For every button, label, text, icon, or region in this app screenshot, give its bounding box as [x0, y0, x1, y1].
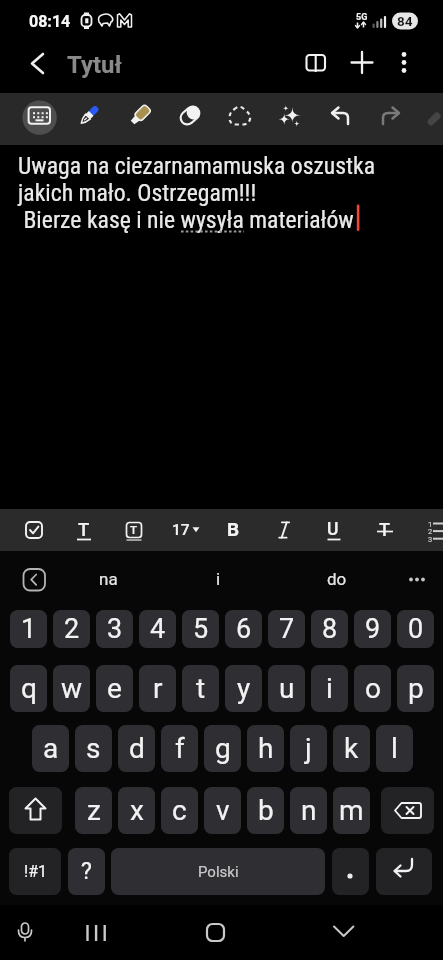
button[interactable] — [376, 848, 432, 895]
button[interactable] — [114, 510, 154, 550]
button[interactable] — [170, 558, 270, 602]
staticText: ? — [81, 858, 92, 885]
button[interactable] — [280, 558, 390, 602]
button[interactable]: 8 — [311, 610, 348, 648]
button[interactable]: s — [75, 725, 112, 772]
button[interactable] — [316, 98, 357, 139]
button[interactable]: o — [354, 665, 391, 712]
button[interactable]: i — [311, 665, 348, 712]
staticText: 84 — [397, 13, 413, 29]
button[interactable]: ? — [68, 848, 105, 895]
staticText: y — [237, 672, 251, 705]
button[interactable]: 6 — [225, 610, 262, 648]
button[interactable] — [381, 787, 434, 834]
button[interactable] — [267, 98, 308, 139]
staticText: 5G — [356, 12, 368, 23]
button[interactable]: n — [290, 787, 327, 834]
button[interactable]: 9 — [354, 610, 391, 648]
button[interactable] — [414, 510, 443, 550]
staticText: b — [258, 794, 274, 827]
button[interactable] — [60, 558, 160, 602]
button[interactable] — [19, 98, 60, 139]
button[interactable]: 2 — [53, 610, 90, 648]
staticText: h — [258, 732, 274, 765]
button[interactable] — [14, 510, 54, 550]
button[interactable]: w — [53, 665, 90, 712]
button[interactable]: l — [376, 725, 413, 772]
button[interactable]: q — [10, 665, 47, 712]
staticText: e — [107, 672, 122, 705]
button[interactable]: x — [118, 787, 155, 834]
button[interactable] — [395, 558, 439, 602]
button[interactable] — [64, 510, 104, 550]
staticText: !#1 — [24, 862, 47, 881]
staticText: 7 — [279, 613, 295, 645]
button[interactable]: k — [333, 725, 370, 772]
staticText: 4 — [150, 613, 166, 645]
staticText: 2 — [64, 613, 80, 645]
button[interactable] — [366, 98, 407, 139]
button[interactable]: y — [225, 665, 262, 712]
button[interactable] — [69, 98, 110, 139]
button[interactable]: Polski — [111, 848, 325, 895]
button[interactable] — [299, 46, 333, 80]
button[interactable] — [323, 913, 363, 953]
button[interactable]: z — [75, 787, 112, 834]
staticText: U — [327, 519, 339, 540]
staticText: 6 — [236, 613, 252, 645]
button[interactable]: 4 — [139, 610, 176, 648]
button[interactable]: v — [204, 787, 241, 834]
button[interactable] — [332, 848, 369, 895]
staticText: z — [87, 794, 101, 827]
staticText: w — [61, 672, 83, 705]
staticText: T — [78, 519, 90, 541]
button[interactable]: 3 — [96, 610, 133, 648]
button[interactable]: 0 — [397, 610, 434, 648]
staticText: 8 — [322, 613, 338, 645]
staticText: d — [129, 732, 145, 765]
button[interactable] — [264, 510, 304, 550]
button[interactable] — [364, 510, 404, 550]
button[interactable]: p — [397, 665, 434, 712]
staticText: l — [391, 732, 398, 765]
button[interactable] — [345, 46, 379, 80]
button[interactable]: u — [268, 665, 305, 712]
button[interactable] — [20, 46, 54, 80]
button[interactable]: g — [204, 725, 241, 772]
button[interactable] — [76, 913, 116, 953]
button[interactable]: r — [139, 665, 176, 712]
button[interactable]: j — [290, 725, 327, 772]
button[interactable]: c — [161, 787, 198, 834]
button[interactable] — [118, 98, 159, 139]
button[interactable]: d — [118, 725, 155, 772]
button[interactable] — [9, 787, 62, 834]
staticText: 9 — [365, 613, 381, 645]
button[interactable]: !#1 — [9, 848, 61, 895]
button[interactable] — [18, 564, 50, 596]
button[interactable]: h — [247, 725, 284, 772]
button[interactable]: 1 — [10, 610, 47, 648]
button[interactable]: e — [96, 665, 133, 712]
button[interactable]: t — [182, 665, 219, 712]
button[interactable] — [387, 46, 421, 80]
button[interactable]: 7 — [268, 610, 305, 648]
button[interactable] — [314, 510, 354, 550]
button[interactable]: b — [247, 787, 284, 834]
button[interactable]: m — [333, 787, 370, 834]
staticText: c — [172, 794, 187, 827]
button[interactable] — [168, 98, 209, 139]
button[interactable]: a — [32, 725, 69, 772]
staticText: 0 — [408, 613, 424, 645]
button[interactable]: 5 — [182, 610, 219, 648]
button[interactable]: f — [161, 725, 198, 772]
button[interactable] — [214, 510, 254, 550]
button[interactable] — [6, 913, 46, 953]
button[interactable] — [164, 510, 204, 550]
staticText: 3 — [107, 613, 123, 645]
staticText: t — [196, 672, 206, 705]
staticText: u — [279, 672, 295, 705]
button[interactable] — [195, 913, 235, 953]
staticText: s — [86, 732, 101, 765]
staticText: p — [408, 672, 424, 705]
button[interactable] — [217, 98, 258, 139]
